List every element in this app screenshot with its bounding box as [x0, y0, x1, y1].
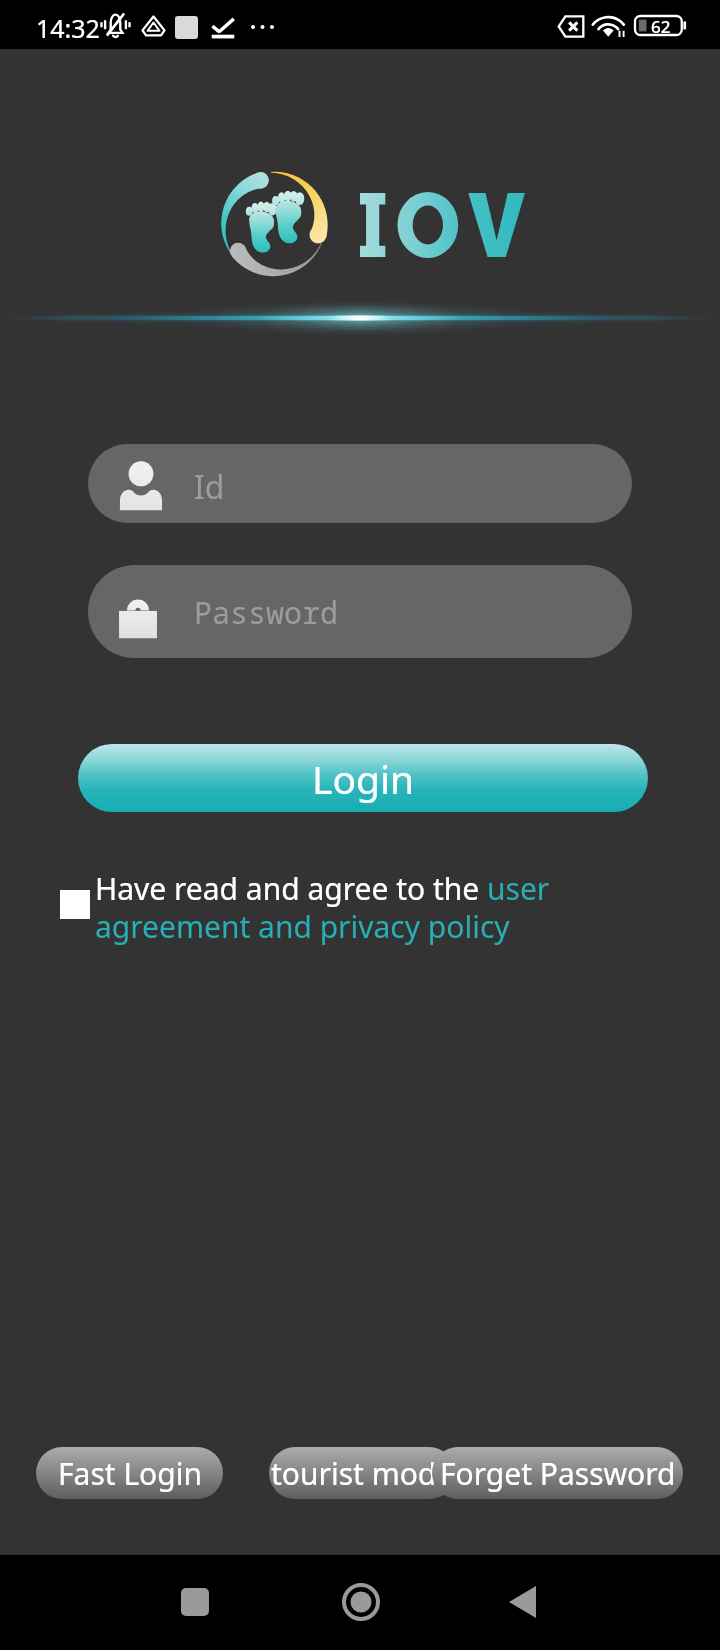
- staticText: Fast Login: [58, 1453, 202, 1494]
- button[interactable]: Login: [78, 744, 648, 812]
- button[interactable]: tourist mode: [269, 1447, 455, 1499]
- button[interactable]: Password: [88, 565, 632, 658]
- staticText: Id: [194, 465, 225, 509]
- button[interactable]: Home: [333, 1574, 389, 1630]
- staticText: 62: [651, 15, 671, 34]
- button[interactable]: Id: [88, 444, 632, 523]
- staticText: 14:32: [36, 11, 100, 45]
- staticText: Login: [312, 752, 415, 805]
- staticText: Password: [194, 592, 338, 633]
- staticText: Forget Password: [440, 1453, 676, 1494]
- button[interactable]: Have read and agree to the user agreemen…: [95, 868, 565, 947]
- staticText: tourist mode: [271, 1453, 454, 1494]
- button[interactable]: Recents: [167, 1574, 223, 1630]
- button[interactable]: Fast Login: [36, 1447, 223, 1499]
- button[interactable]: Forget Password: [432, 1447, 683, 1499]
- button[interactable]: Back: [494, 1574, 550, 1630]
